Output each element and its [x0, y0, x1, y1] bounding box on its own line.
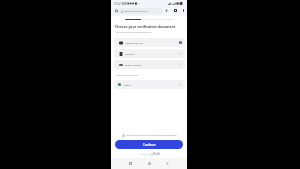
staticText: Passport	[125, 52, 135, 55]
staticText: Choose your verification document	[115, 24, 176, 29]
staticText: Nigeria	[123, 83, 132, 86]
button[interactable]: Continue	[115, 140, 183, 149]
staticText: 10:32	[114, 2, 121, 6]
button[interactable]: Tabs	[172, 7, 178, 13]
button[interactable]: National ID card	[114, 38, 185, 47]
staticText: Didit	[153, 152, 160, 156]
button[interactable]: Back	[163, 159, 171, 167]
staticText: Powered by	[139, 153, 149, 155]
staticText: COUNTRY OF ISSUANCE	[116, 74, 138, 77]
staticText: Continue	[143, 143, 156, 147]
button[interactable]: More options	[180, 7, 186, 13]
button[interactable]: verify.didit.me/session/sv	[119, 8, 163, 14]
button[interactable]: Download	[163, 7, 169, 13]
staticText: Driver's license	[125, 63, 142, 66]
staticText: You must carry an official government ID	[116, 31, 152, 34]
button[interactable]: Passport	[114, 49, 185, 58]
staticText: Your information is only used for identi…	[126, 134, 177, 137]
button[interactable]: Recents	[126, 159, 134, 167]
staticText: verify.didit.me/session/sv	[124, 10, 148, 13]
staticText: National ID card	[125, 41, 143, 44]
button[interactable]: Home	[145, 159, 153, 167]
button[interactable]: Home	[113, 7, 119, 13]
button[interactable]: Driver's license	[114, 60, 185, 69]
button[interactable]: Nigeria	[114, 80, 185, 89]
